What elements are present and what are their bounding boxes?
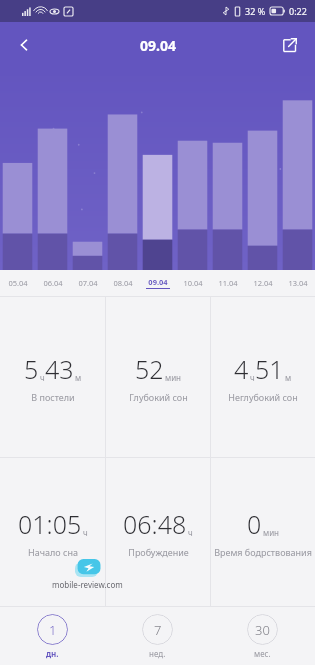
staticText: ч — [188, 527, 193, 538]
button[interactable]: 09.04 — [140, 270, 175, 296]
staticText: ч — [83, 527, 88, 538]
staticText: 12.04 — [253, 278, 273, 288]
staticText: 07.04 — [78, 278, 98, 288]
button[interactable]: 10.04 — [175, 270, 210, 296]
staticText: 13.04 — [288, 278, 308, 288]
button[interactable]: 0 — [211, 458, 315, 606]
staticText: м — [285, 372, 292, 383]
staticText: 09.04 — [148, 277, 168, 287]
button[interactable]: 06.04 — [35, 270, 70, 296]
staticText: 51 — [255, 352, 284, 386]
staticText: 43 — [45, 352, 74, 386]
button[interactable]: 06:48 — [106, 458, 210, 606]
staticText: 4 — [234, 352, 249, 386]
staticText: нед. — [149, 648, 166, 659]
staticText: 10.04 — [183, 278, 203, 288]
staticText: ч — [40, 372, 45, 383]
staticText: 1 — [49, 621, 57, 639]
staticText: ч — [250, 372, 255, 383]
button[interactable] — [70, 68, 105, 270]
button[interactable]: 4 — [211, 297, 315, 457]
button[interactable]: 52 — [106, 297, 210, 457]
button[interactable]: 12.04 — [245, 270, 280, 296]
button[interactable] — [0, 68, 35, 270]
staticText: 11.04 — [218, 278, 238, 288]
staticText: 0:22 — [289, 5, 307, 17]
button[interactable] — [210, 68, 245, 270]
staticText: 08.04 — [113, 278, 133, 288]
button[interactable]: 1 — [0, 607, 105, 665]
staticText: Начало сна — [28, 546, 78, 558]
button[interactable]: 5 — [0, 297, 105, 457]
staticText: 0 — [247, 507, 262, 541]
staticText: мес. — [254, 648, 271, 659]
staticText: mobile-review.com — [52, 579, 123, 590]
staticText: 01:05 — [18, 507, 82, 541]
button[interactable] — [245, 68, 280, 270]
staticText: 09.04 — [140, 36, 176, 55]
button[interactable]: 05.04 — [0, 270, 35, 296]
button[interactable]: 01:05 — [0, 458, 105, 606]
staticText: 32 % — [245, 5, 266, 17]
staticText: Время бодрствования — [214, 546, 312, 558]
staticText: дн. — [46, 648, 59, 659]
button[interactable]: 07.04 — [70, 270, 105, 296]
staticText: В постели — [31, 391, 75, 403]
staticText: Пробуждение — [128, 546, 189, 558]
staticText: 5 — [24, 352, 39, 386]
staticText: 30 — [255, 621, 270, 639]
button[interactable]: 08.04 — [105, 270, 140, 296]
button[interactable]: 7 — [105, 607, 210, 665]
staticText: 06:48 — [123, 507, 187, 541]
button[interactable] — [35, 68, 70, 270]
button[interactable]: 13.04 — [280, 270, 315, 296]
button[interactable]: 30 — [210, 607, 315, 665]
staticText: 52 — [135, 352, 164, 386]
staticText: 05.04 — [8, 278, 28, 288]
staticText: Неглубокий сон — [228, 391, 298, 403]
staticText: мин — [263, 527, 280, 538]
button[interactable] — [140, 68, 175, 270]
staticText: Глубокий сон — [129, 391, 188, 403]
button[interactable] — [280, 68, 315, 270]
button[interactable]: Share — [273, 29, 305, 61]
staticText: 7 — [154, 621, 162, 639]
button[interactable]: 11.04 — [210, 270, 245, 296]
button[interactable] — [105, 68, 140, 270]
staticText: м — [75, 372, 82, 383]
staticText: 06.04 — [43, 278, 63, 288]
staticText: мин — [165, 372, 182, 383]
button[interactable]: Back — [8, 29, 40, 61]
button[interactable] — [175, 68, 210, 270]
